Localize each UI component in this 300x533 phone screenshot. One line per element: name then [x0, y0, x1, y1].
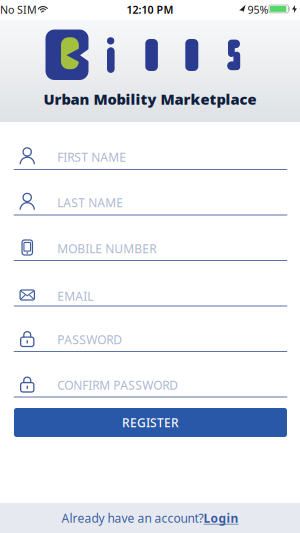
- staticText: LAST NAME: [57, 194, 123, 210]
- button[interactable]: CONFIRM PASSWORD: [13, 353, 287, 398]
- staticText: Already have an account?: [61, 510, 203, 526]
- staticText: 95%: [247, 2, 268, 17]
- staticText: CONFIRM PASSWORD: [57, 377, 178, 393]
- staticText: EMAIL: [57, 288, 93, 304]
- button[interactable]: REGISTER: [14, 408, 287, 437]
- staticText: 12:10 PM: [126, 2, 173, 17]
- button[interactable]: EMAIL: [13, 262, 287, 307]
- staticText: FIRST NAME: [57, 149, 126, 165]
- staticText: No SIM: [0, 2, 37, 17]
- staticText: Urban Mobility Marketplace: [43, 89, 256, 109]
- staticText: MOBILE NUMBER: [57, 240, 156, 256]
- button[interactable]: Already have an account?: [0, 503, 300, 533]
- button[interactable]: PASSWORD: [13, 307, 287, 352]
- button[interactable]: FIRST NAME: [13, 125, 287, 170]
- staticText: REGISTER: [122, 414, 179, 430]
- staticText: Login: [203, 510, 238, 526]
- staticText: PASSWORD: [57, 331, 122, 347]
- button[interactable]: MOBILE NUMBER: [13, 216, 287, 261]
- button[interactable]: LAST NAME: [13, 171, 287, 216]
